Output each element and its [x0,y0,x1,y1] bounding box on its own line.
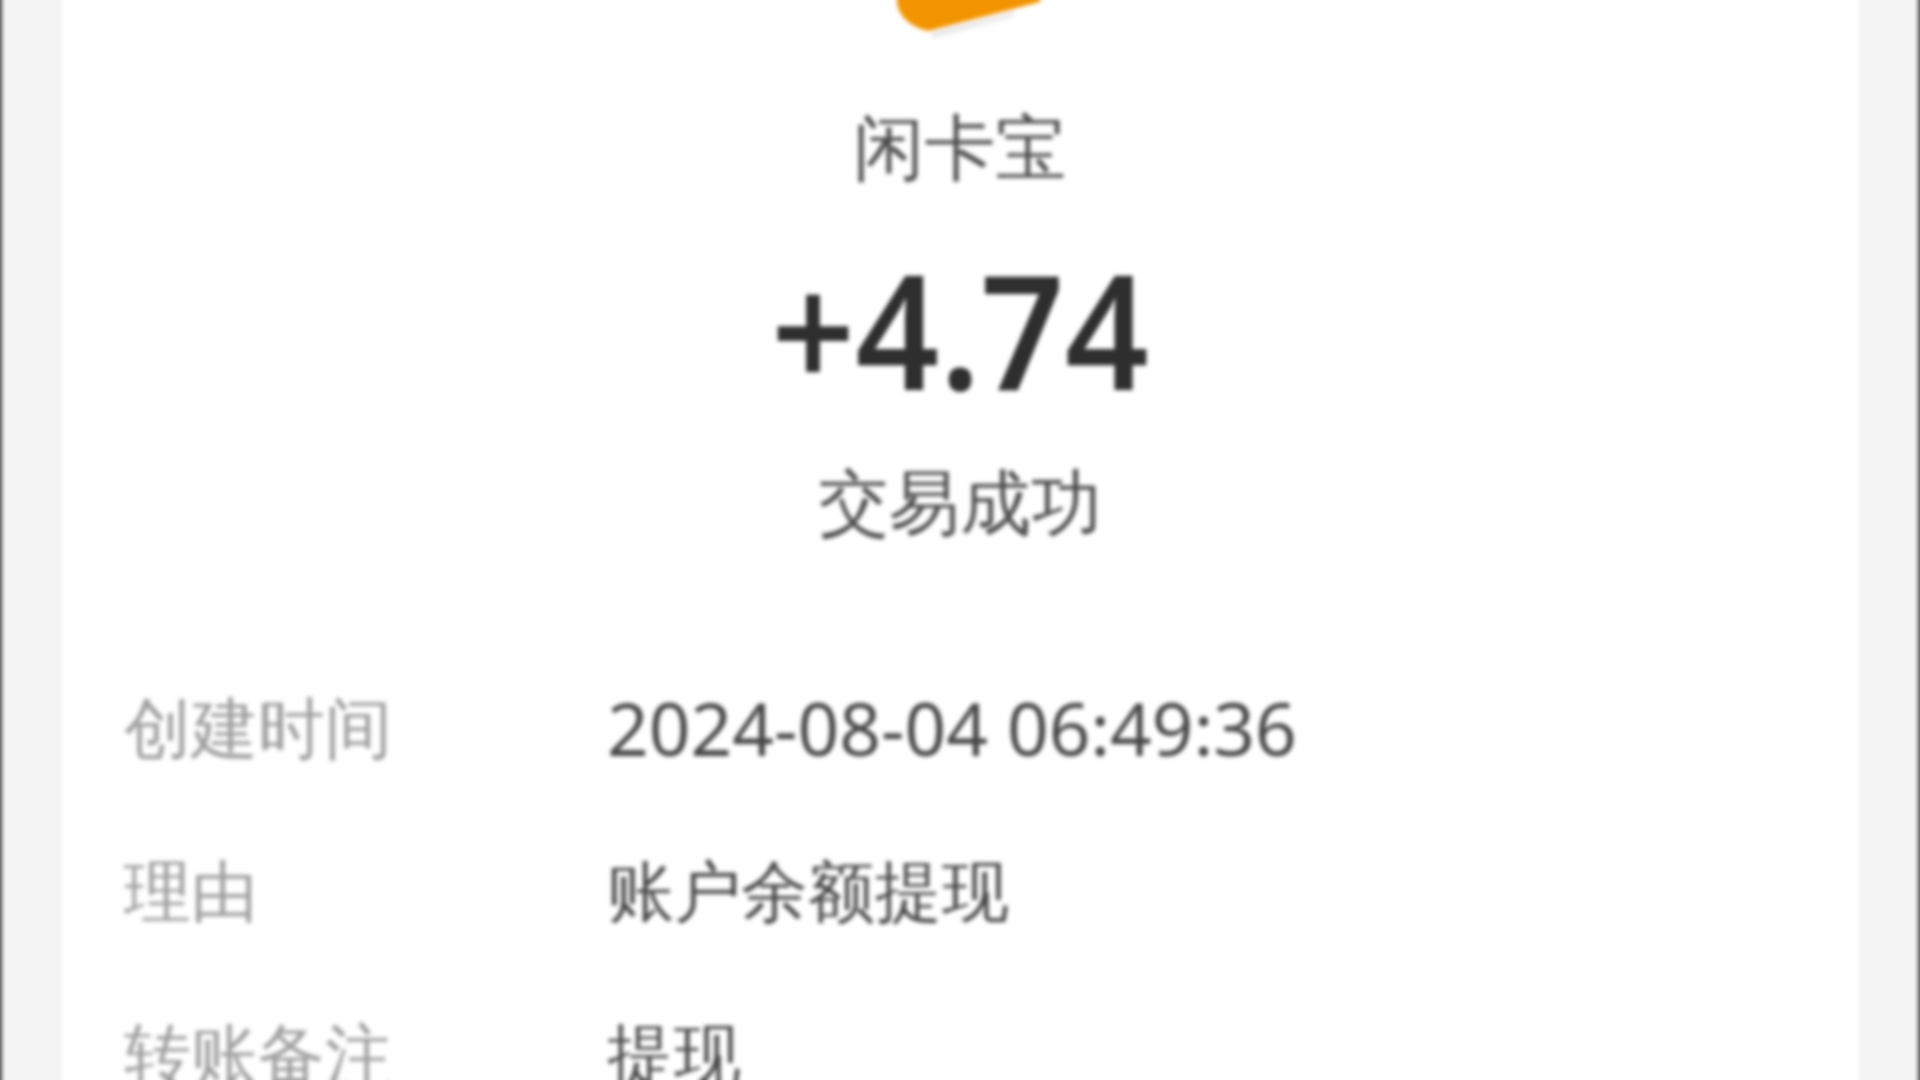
staticText: 2024-08-04 06:49:36 [607,678,1297,777]
button[interactable]: 创建时间 [0,685,1920,795]
staticText: 创建时间 [124,687,392,771]
staticText: 转账备注 [124,1013,392,1080]
staticText: 闲卡宝 [14,104,1906,195]
other: 闲卡宝 logo [880,0,1060,48]
button[interactable]: 转账备注 [0,1011,1920,1080]
staticText: 交易成功 [14,459,1906,550]
staticText: 理由 [124,850,258,934]
staticText: 提现 [607,1013,741,1080]
button[interactable]: 理由 [0,848,1920,958]
staticText: 账户余额提现 [607,850,1009,934]
staticText: +4.74 [76,219,1844,437]
